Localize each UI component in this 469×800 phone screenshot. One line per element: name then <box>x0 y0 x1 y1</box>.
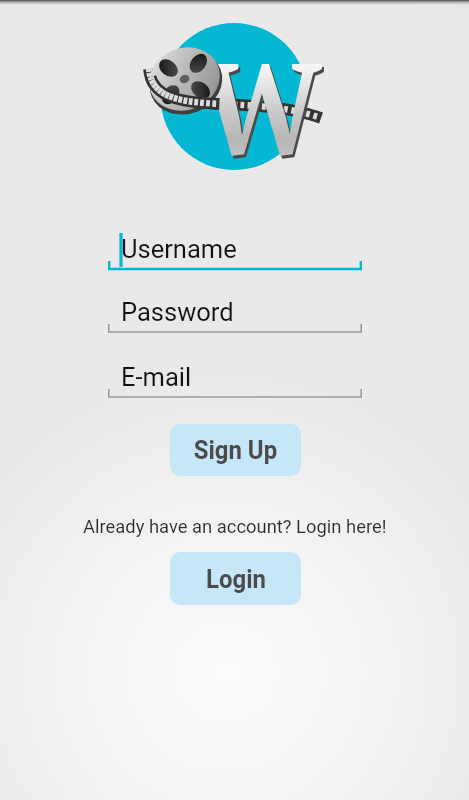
button[interactable]: Sign Up <box>170 424 301 476</box>
staticText: Password <box>121 297 234 327</box>
staticText: W <box>200 20 323 191</box>
staticText: Login <box>206 564 266 594</box>
button[interactable]: Username <box>108 226 362 273</box>
button[interactable]: E-mail <box>108 354 362 401</box>
staticText: W <box>202 23 325 194</box>
button[interactable]: Password <box>108 289 362 336</box>
staticText: Already have an account? Login here! <box>83 515 387 537</box>
staticText: E-mail <box>121 362 192 392</box>
button[interactable]: Login <box>170 552 301 605</box>
staticText: Sign Up <box>194 435 277 465</box>
staticText: Username <box>121 234 237 264</box>
